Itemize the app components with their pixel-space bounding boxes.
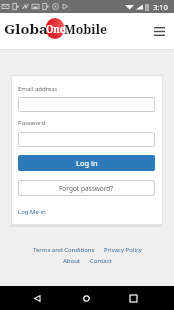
staticText: Log in [76,158,98,168]
button[interactable]: Menu [149,21,169,41]
staticText: One [45,22,65,36]
staticText: Email address [18,85,58,93]
button[interactable]: Log Me in [18,208,46,216]
button[interactable]: Home [75,287,98,310]
button[interactable]: Log in [18,155,155,171]
staticText: Forgot password? [59,184,114,193]
button[interactable]: Recents [122,287,145,310]
button[interactable]: Password input [18,132,155,147]
button[interactable]: Back [25,287,48,310]
button[interactable]: Privacy Policy [104,246,142,254]
button[interactable]: Forgot password? [18,180,155,196]
button[interactable]: Email address input [18,97,155,112]
staticText: 3:10 [153,2,168,12]
button[interactable]: About [63,257,81,265]
staticText: Global [4,20,54,38]
staticText: Mobile [64,20,108,38]
button[interactable]: Terms and Conditions [33,246,95,254]
staticText: Password [18,119,46,127]
button[interactable]: Contact [90,257,112,265]
